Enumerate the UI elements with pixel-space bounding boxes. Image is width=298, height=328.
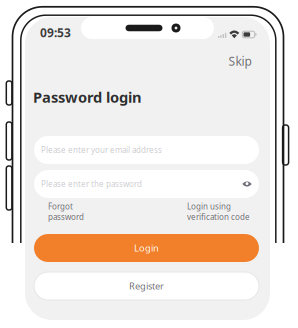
staticText: Forgot password xyxy=(48,201,84,222)
button[interactable]: Forgot password xyxy=(48,201,84,222)
staticText: Password login xyxy=(33,87,142,107)
staticText: Please enter the password xyxy=(41,179,142,189)
staticText: Skip xyxy=(228,53,251,69)
staticText: Register xyxy=(129,280,164,292)
staticText: Login xyxy=(134,242,159,254)
staticText: 09:53 xyxy=(40,24,71,40)
staticText: Login using verification code xyxy=(187,201,250,222)
button[interactable]: Login using verification code xyxy=(187,201,250,222)
button[interactable]: Register xyxy=(34,272,259,300)
button[interactable]: Show password xyxy=(238,174,256,194)
button[interactable]: Skip xyxy=(224,52,256,70)
button[interactable]: Login xyxy=(34,234,259,262)
staticText: Please enter your email address xyxy=(41,145,162,155)
